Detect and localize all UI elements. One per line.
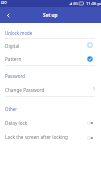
staticText: Pattern xyxy=(5,56,22,62)
staticText: 4G xyxy=(73,1,78,6)
staticText: Lock the screen after locking xyxy=(5,134,68,140)
staticText: Digital xyxy=(5,43,20,49)
button[interactable]: Pattern xyxy=(0,53,101,66)
button[interactable]: Unselected option xyxy=(87,41,101,52)
button[interactable]: Lock the screen after locking xyxy=(0,130,101,144)
button[interactable]: Digital xyxy=(0,40,101,53)
button[interactable]: Back xyxy=(0,7,15,23)
staticText: 11:36 pm xyxy=(86,1,101,7)
button[interactable]: Toggle xyxy=(86,133,101,144)
staticText: Delay lock xyxy=(5,120,28,126)
button[interactable]: Toggle xyxy=(86,118,101,129)
staticText: Unlock mode xyxy=(5,30,33,36)
button[interactable]: Change Password xyxy=(0,83,101,96)
staticText: Other xyxy=(5,106,18,112)
button[interactable]: Delay lock xyxy=(0,117,101,130)
button[interactable]: Selected option xyxy=(87,55,101,66)
staticText: Password xyxy=(5,73,25,79)
staticText: Set up xyxy=(43,12,58,19)
staticText: Change Password xyxy=(5,87,45,93)
